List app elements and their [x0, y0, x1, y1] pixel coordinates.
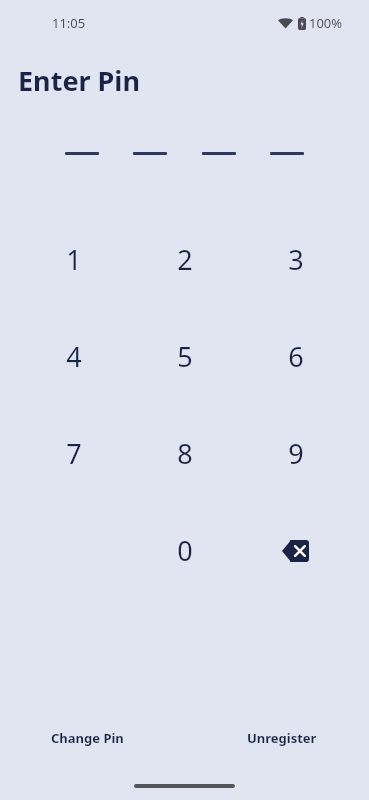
- button[interactable]: Change Pin: [51, 729, 124, 747]
- button[interactable]: 6: [240, 308, 351, 405]
- staticText: 8: [177, 435, 193, 472]
- staticText: 6: [288, 338, 304, 375]
- staticText: 100%: [309, 14, 343, 32]
- staticText: 4: [66, 338, 82, 375]
- button[interactable]: 2: [129, 211, 240, 308]
- button[interactable]: 0: [129, 502, 240, 599]
- button[interactable]: Unregister: [247, 729, 317, 747]
- button[interactable]: 9: [240, 405, 351, 502]
- button[interactable]: Backspace: [240, 502, 351, 599]
- staticText: Unregister: [247, 729, 317, 747]
- staticText: 1: [66, 241, 82, 278]
- button[interactable]: 1: [18, 211, 129, 308]
- button[interactable]: 7: [18, 405, 129, 502]
- button[interactable]: 5: [129, 308, 240, 405]
- staticText: 3: [288, 241, 304, 278]
- staticText: 2: [177, 241, 193, 278]
- staticText: Change Pin: [51, 729, 124, 747]
- button[interactable]: 3: [240, 211, 351, 308]
- button[interactable]: 8: [129, 405, 240, 502]
- staticText: 7: [66, 435, 82, 472]
- button[interactable]: 4: [18, 308, 129, 405]
- staticText: Enter Pin: [18, 62, 140, 99]
- staticText: 9: [288, 435, 304, 472]
- staticText: 5: [177, 338, 193, 375]
- staticText: 0: [177, 532, 193, 569]
- staticText: 11:05: [52, 14, 86, 32]
